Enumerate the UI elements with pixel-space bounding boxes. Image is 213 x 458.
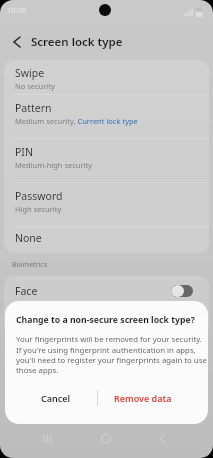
staticText: Your fingerprints will be removed for yo… [16,334,207,375]
staticText: Cancel [41,392,71,404]
button[interactable]: Remove data [103,385,183,411]
button[interactable]: None [4,227,209,253]
staticText: PIN [15,145,33,159]
staticText: Face [15,284,38,298]
staticText: No security [15,81,55,91]
staticText: None [15,231,42,245]
button[interactable]: Swipe [4,60,209,94]
staticText: 10:00 [7,5,27,15]
staticText: High security [15,204,62,214]
staticText: Change to a non-secure screen lock type? [16,314,195,326]
button[interactable]: Cancel [20,385,92,411]
button[interactable]: Password [4,183,209,226]
button[interactable]: Pattern [4,95,209,138]
button[interactable] [12,36,22,48]
staticText: Password [15,189,63,203]
button[interactable]: PIN [4,139,209,182]
button[interactable] [171,285,193,297]
staticText: Remove data [114,392,172,404]
staticText: Screen lock type [31,34,123,50]
staticText: Pattern [15,101,52,115]
staticText: Swipe [15,66,45,80]
staticText: Medium-high security [15,160,93,170]
staticText: Biometrics [12,260,48,270]
staticText: Medium security, Current lock type [15,116,138,126]
button[interactable]: Face [4,276,209,306]
